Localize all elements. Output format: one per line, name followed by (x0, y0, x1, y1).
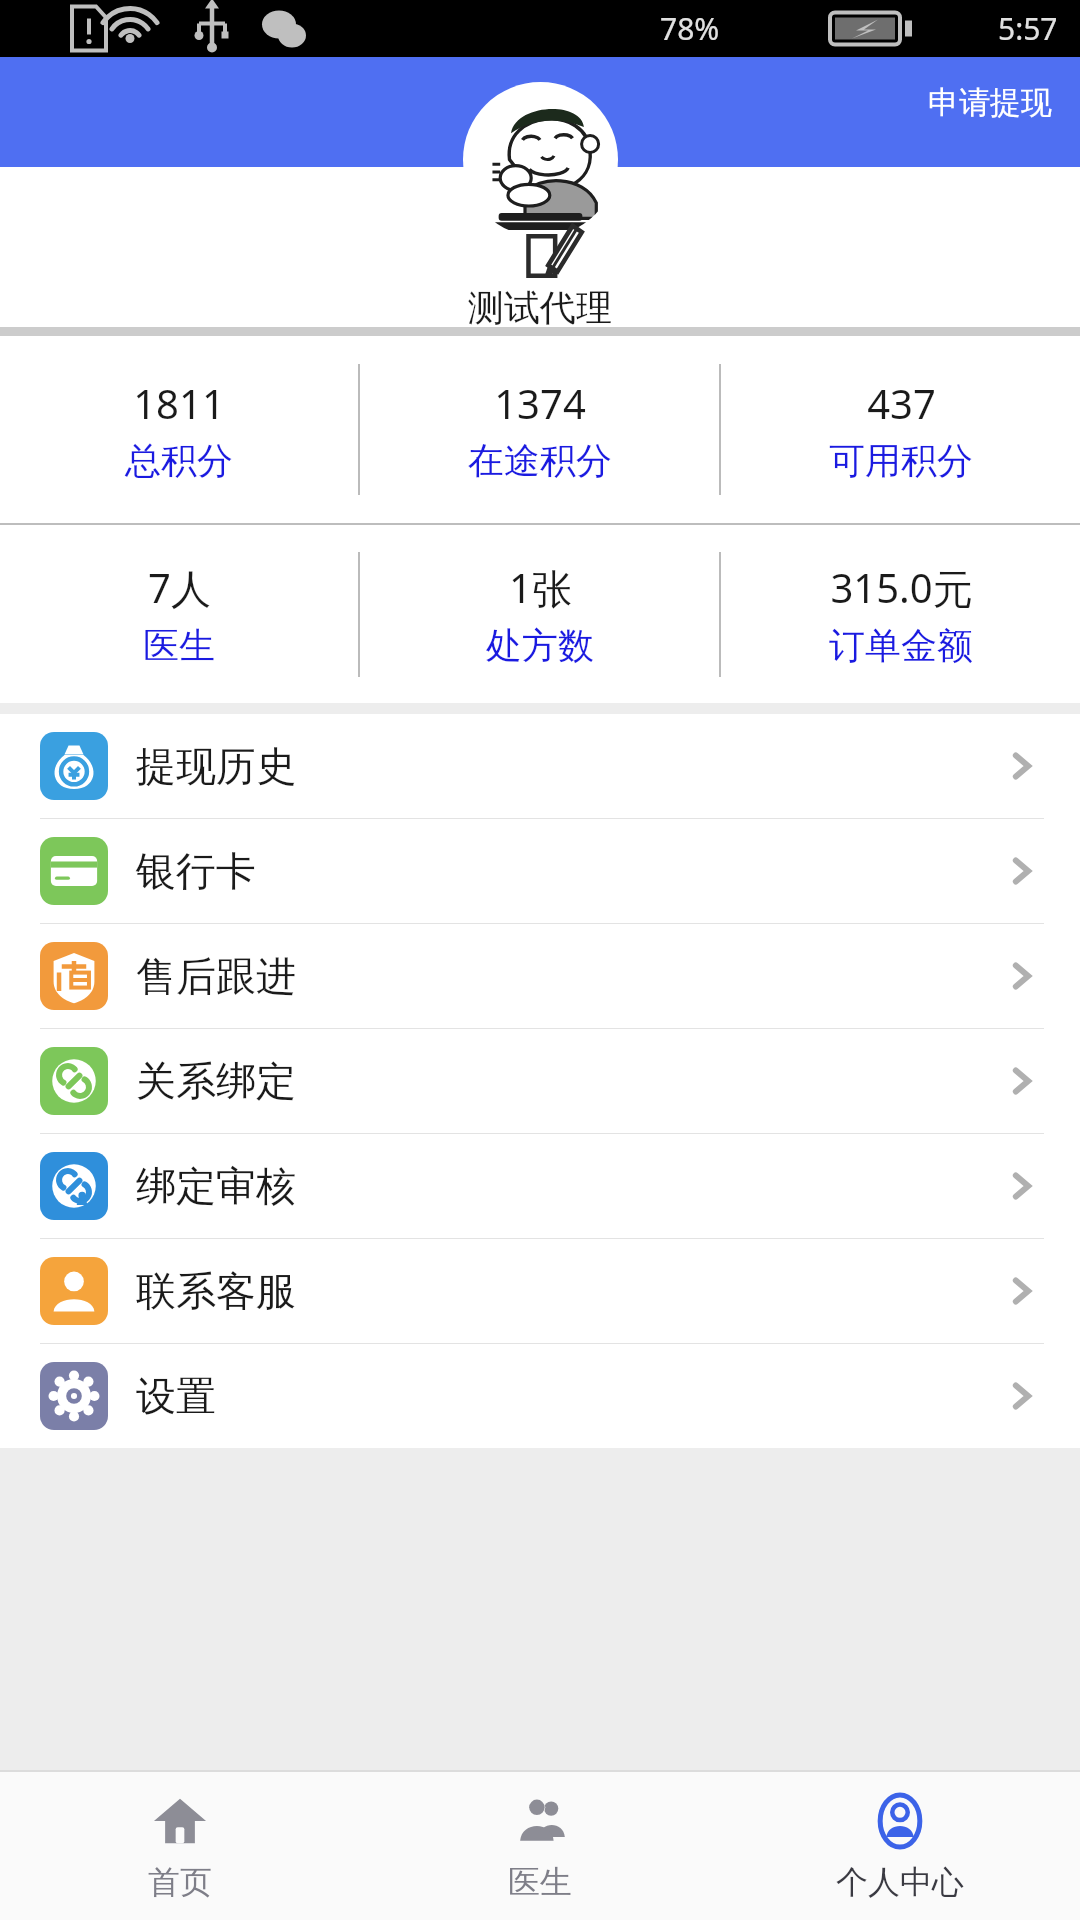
staticText: 可用积分 (829, 438, 973, 483)
staticText: 1张 (509, 560, 572, 615)
button[interactable]: 申请提现 (920, 73, 1060, 132)
staticText: 1374 (494, 376, 586, 430)
staticText: 绑定审核 (136, 1161, 296, 1211)
button[interactable]: 提现历史 (0, 714, 1080, 818)
button[interactable]: Edit profile (520, 215, 588, 283)
staticText: 个人中心 (836, 1862, 964, 1902)
button[interactable]: 1张 (360, 525, 719, 703)
button[interactable]: 7人 (0, 525, 358, 703)
staticText: 7人 (148, 560, 211, 615)
staticText: 订单金额 (829, 623, 973, 668)
staticText: 关系绑定 (136, 1056, 296, 1106)
button[interactable]: 售后跟进 (0, 924, 1080, 1028)
staticText: 设置 (136, 1371, 216, 1421)
staticText: 总积分 (125, 438, 233, 483)
button[interactable]: 个人中心 (720, 1772, 1080, 1920)
button[interactable]: 联系客服 (0, 1239, 1080, 1343)
staticText: 提现历史 (136, 741, 296, 791)
staticText: 315.0元 (830, 560, 973, 615)
staticText: 医生 (143, 623, 215, 668)
button[interactable]: 1374 (360, 336, 719, 523)
button[interactable]: 315.0元 (721, 525, 1080, 703)
staticText: 医生 (508, 1862, 572, 1902)
staticText: 首页 (148, 1862, 212, 1902)
staticText: 437 (867, 376, 936, 430)
button[interactable]: Avatar (463, 82, 618, 237)
staticText: 申请提现 (928, 83, 1052, 122)
button[interactable]: 437 (721, 336, 1080, 523)
staticText: 银行卡 (136, 846, 256, 896)
button[interactable]: 1811 (0, 336, 358, 523)
staticText: 处方数 (486, 623, 594, 668)
button[interactable]: 设置 (0, 1344, 1080, 1448)
staticText: 在途积分 (468, 438, 612, 483)
button[interactable]: 关系绑定 (0, 1029, 1080, 1133)
staticText: 78% (660, 8, 720, 49)
staticText: 测试代理 (468, 285, 612, 327)
button[interactable]: 绑定审核 (0, 1134, 1080, 1238)
button[interactable]: 银行卡 (0, 819, 1080, 923)
staticText: 售后跟进 (136, 951, 296, 1001)
button[interactable]: 首页 (0, 1772, 360, 1920)
button[interactable]: 医生 (360, 1772, 720, 1920)
staticText: 5:57 (998, 8, 1058, 49)
staticText: 1811 (133, 376, 225, 430)
staticText: 联系客服 (136, 1266, 296, 1316)
